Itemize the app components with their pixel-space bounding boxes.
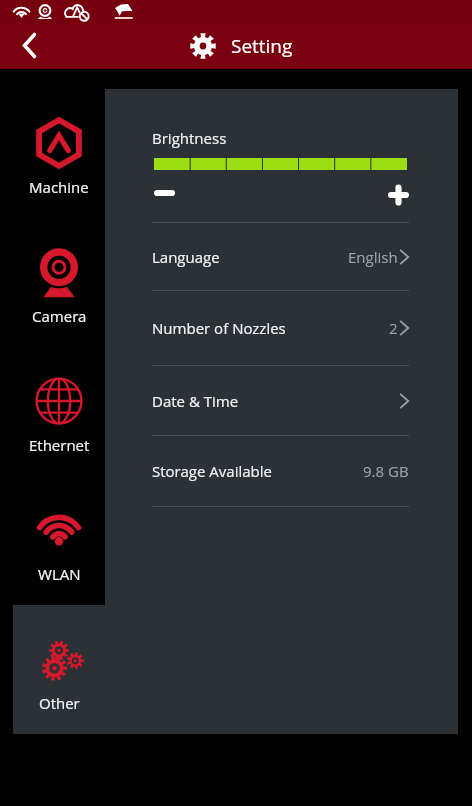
button[interactable]: Camera [13,218,105,347]
button[interactable]: WLAN [13,476,105,605]
staticText: Camera [32,306,87,326]
staticText: Setting [231,33,293,59]
staticText: Ethernet [29,435,90,455]
staticText: 2 [389,318,398,338]
staticText: Storage Available [152,461,272,481]
button[interactable]: Storage Available [152,436,409,506]
staticText: Number of Nozzles [152,318,286,338]
button[interactable]: Back [0,22,50,69]
staticText: Machine [29,177,89,197]
button[interactable]: Other [13,605,105,734]
button[interactable]: Date & Time [152,366,409,435]
button[interactable]: Increase brightness [365,173,409,217]
staticText: 9.8 GB [363,461,409,481]
staticText: Date & Time [152,391,239,411]
staticText: Brightness [152,128,227,148]
button[interactable]: Machine [13,89,105,218]
button[interactable]: Number of Nozzles [152,291,409,365]
button[interactable]: Ethernet [13,347,105,476]
staticText: Other [39,693,80,713]
staticText: English [348,247,398,267]
button[interactable]: Decrease brightness [152,171,196,215]
staticText: WLAN [38,564,81,584]
staticText: Language [152,247,220,267]
button[interactable]: Language [152,223,409,290]
